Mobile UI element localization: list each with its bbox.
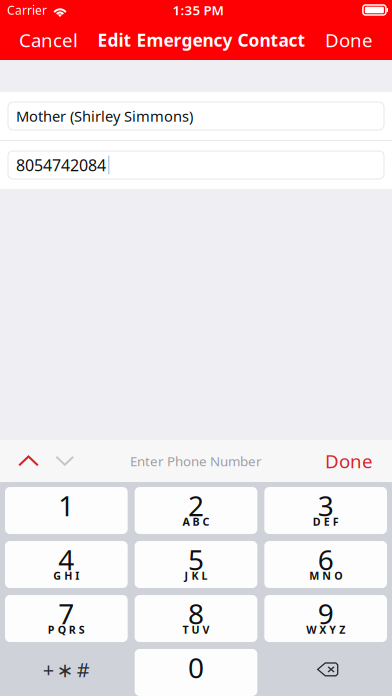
button[interactable]: 6: [264, 541, 387, 588]
button[interactable]: 4: [5, 541, 128, 588]
staticText: 6: [318, 541, 334, 578]
button[interactable]: Done: [314, 20, 384, 60]
button[interactable]: Cancel: [8, 20, 89, 60]
staticText: J K L: [184, 568, 207, 583]
staticText: 4: [58, 541, 74, 578]
staticText: 3: [318, 487, 334, 524]
staticText: 7: [58, 595, 74, 632]
staticText: T U V: [182, 622, 209, 637]
button[interactable]: 0: [135, 649, 257, 696]
staticText: 8: [188, 595, 204, 632]
button[interactable]: Plus, star, pound: [5, 649, 128, 696]
staticText: Done: [325, 449, 373, 473]
staticText: D E F: [313, 514, 339, 529]
staticText: 8054742084: [16, 154, 106, 176]
button[interactable]: 9: [264, 595, 387, 642]
staticText: G H I: [53, 568, 79, 583]
button[interactable]: 3: [264, 487, 387, 534]
staticText: 1: [58, 487, 74, 524]
button[interactable]: 7: [5, 595, 128, 642]
button[interactable]: 2: [135, 487, 257, 534]
staticText: Enter Phone Number: [130, 452, 262, 470]
staticText: A B C: [182, 514, 209, 529]
staticText: 9: [318, 595, 334, 632]
staticText: 2: [188, 487, 204, 524]
button[interactable]: Delete: [264, 649, 387, 696]
staticText: Cancel: [19, 28, 78, 52]
staticText: + ∗ #: [43, 656, 90, 683]
staticText: Done: [325, 28, 373, 52]
staticText: W X Y Z: [306, 622, 345, 637]
staticText: Mother (Shirley Simmons): [16, 106, 193, 126]
button[interactable]: 5: [135, 541, 257, 588]
button[interactable]: Next field: [48, 440, 82, 482]
button[interactable]: Done: [314, 440, 384, 482]
staticText: 0: [188, 649, 204, 686]
button[interactable]: 8: [135, 595, 257, 642]
staticText: Edit Emergency Contact: [97, 28, 305, 51]
button[interactable]: 1: [5, 487, 128, 534]
staticText: M N O: [309, 568, 342, 583]
staticText: P Q R S: [48, 622, 85, 637]
staticText: 5: [188, 541, 204, 578]
staticText: Carrier: [7, 2, 47, 18]
button[interactable]: Previous field: [9, 440, 48, 482]
staticText: 1:35 PM: [172, 1, 223, 19]
